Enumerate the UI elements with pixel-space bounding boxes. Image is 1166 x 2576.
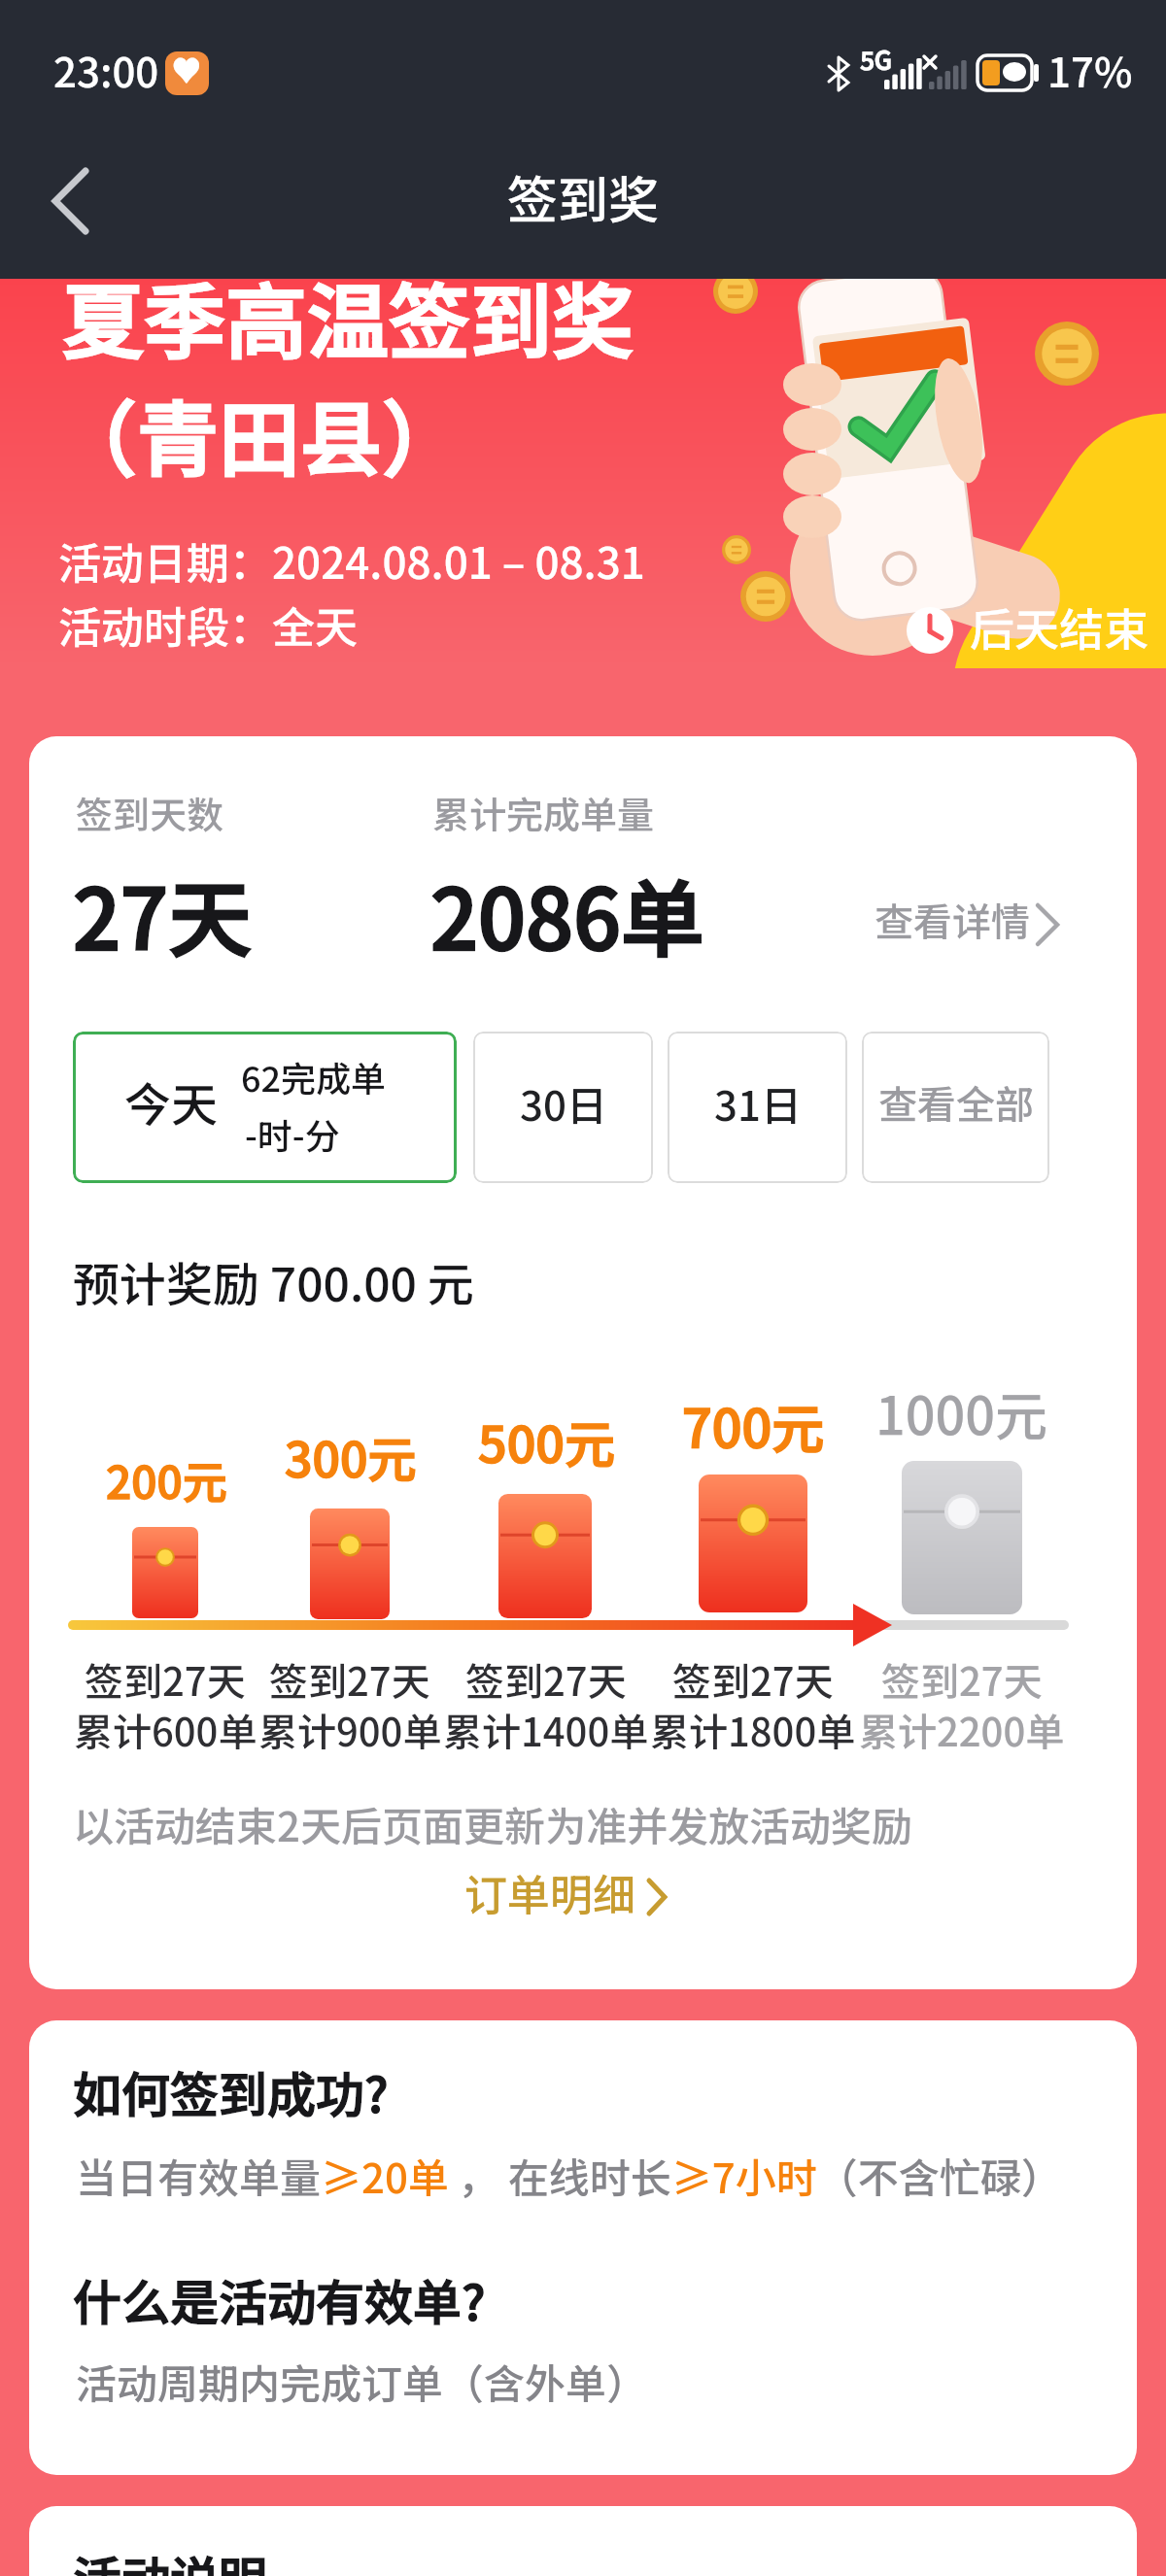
staticText: 累计900单 [258, 1702, 442, 1758]
staticText: 27天 [73, 853, 253, 974]
staticText: 当日有效单量≥20单 ， 在线时长≥7小时（不含忙碌） [76, 2146, 1062, 2205]
staticText: 1000元 [875, 1374, 1048, 1450]
staticText: 累计2200单 [859, 1702, 1065, 1758]
staticText: ♥ [172, 48, 201, 89]
staticText: 夏季高温签到奖 [62, 257, 634, 376]
staticText: 签到27天 [465, 1651, 627, 1708]
staticText: 活动周期内完成订单（含外单） [76, 2352, 648, 2411]
staticText: 23:00 [53, 40, 159, 99]
staticText: 200元 [106, 1447, 227, 1512]
staticText: 如何签到成功? [73, 2056, 389, 2126]
staticText: 今天 [124, 1068, 219, 1135]
staticText: 500元 [478, 1405, 615, 1477]
staticText: 签到天数 [76, 786, 224, 839]
staticText: 预计奖励 700.00 元 [73, 1247, 474, 1315]
staticText: 订单明细 [464, 1861, 635, 1923]
staticText: 查看详情 [874, 892, 1030, 948]
staticText: 签到27天 [85, 1651, 246, 1708]
staticText: 签到27天 [672, 1651, 834, 1708]
staticText: 累计完成单量 [432, 786, 655, 839]
staticText: 700元 [682, 1387, 825, 1463]
staticText: 签到27天 [269, 1651, 430, 1708]
staticText: 活动说明 [73, 2541, 267, 2576]
staticText: 累计600单 [74, 1702, 257, 1758]
staticText: 31日 [714, 1073, 802, 1133]
staticText: 17% [1047, 40, 1133, 99]
staticText: 活动时段：全天 [58, 593, 358, 656]
staticText: -时-分 [245, 1108, 340, 1159]
staticText: 以活动结束2天后页面更新为准并发放活动奖励 [73, 1794, 912, 1853]
staticText: 签到奖 [507, 160, 660, 233]
staticText: 签到27天 [881, 1651, 1043, 1708]
staticText: 累计1800单 [650, 1702, 856, 1758]
staticText: 5G [860, 41, 893, 78]
staticText: 30日 [520, 1073, 607, 1133]
staticText: 活动日期：2024.08.01 – 08.31 [58, 529, 645, 592]
staticText: 后天结束 [970, 594, 1149, 660]
staticText: 300元 [285, 1421, 417, 1491]
staticText: 什么是活动有效单? [73, 2264, 486, 2334]
staticText: 查看全部 [878, 1074, 1034, 1131]
staticText: 62完成单 [241, 1051, 387, 1102]
staticText: （青田县） [55, 375, 464, 493]
staticText: 2086单 [430, 853, 705, 974]
staticText: 累计1400单 [443, 1702, 649, 1758]
